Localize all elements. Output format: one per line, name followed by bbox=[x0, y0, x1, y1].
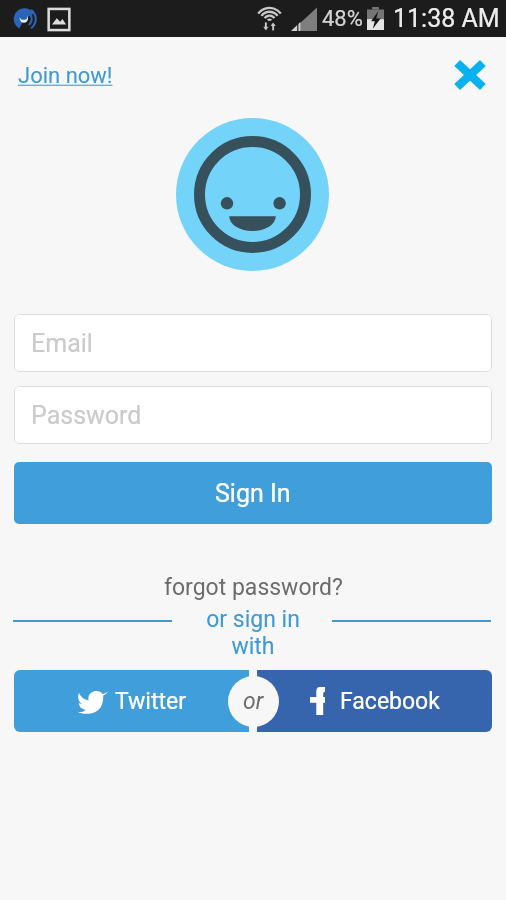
button[interactable]: Join now! bbox=[14, 59, 117, 93]
staticText: Email bbox=[31, 329, 93, 358]
staticText: 48% bbox=[322, 6, 363, 32]
staticText: forgot password? bbox=[164, 574, 343, 601]
button[interactable]: Password bbox=[14, 386, 492, 444]
button[interactable]: Facebook bbox=[257, 670, 492, 732]
staticText: or sign in with bbox=[202, 606, 304, 660]
button[interactable]: Email bbox=[14, 314, 492, 372]
button[interactable]: forgot password? bbox=[0, 574, 506, 601]
staticText: Password bbox=[31, 401, 142, 430]
staticText: 11:38 AM bbox=[393, 4, 500, 33]
staticText: Twitter bbox=[115, 688, 186, 715]
button[interactable]: Close bbox=[447, 52, 492, 97]
button[interactable]: Twitter bbox=[14, 670, 249, 732]
staticText: or bbox=[243, 688, 264, 715]
button[interactable]: Sign In bbox=[14, 462, 492, 524]
staticText: Facebook bbox=[340, 688, 440, 715]
staticText: Join now! bbox=[18, 63, 113, 89]
staticText: Sign In bbox=[215, 479, 291, 508]
